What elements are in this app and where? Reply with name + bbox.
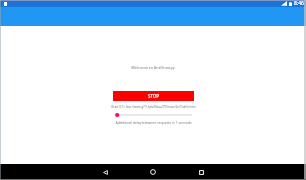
button[interactable]: Back (95, 164, 115, 180)
button[interactable]: STOP (113, 91, 194, 101)
staticText: 8:46 (294, 0, 304, 7)
button[interactable]: Home (143, 164, 163, 180)
staticText: STOP (148, 93, 159, 99)
button[interactable]: Recent apps (191, 164, 211, 180)
staticText: Read (2:1): http://www.g7l1.hplv/8zbxy/7… (111, 105, 196, 109)
staticText: Welcome to AntiSnoopy (131, 65, 175, 70)
button[interactable] (115, 112, 192, 118)
staticText: Additional delay between requests is 1 s… (115, 120, 192, 125)
